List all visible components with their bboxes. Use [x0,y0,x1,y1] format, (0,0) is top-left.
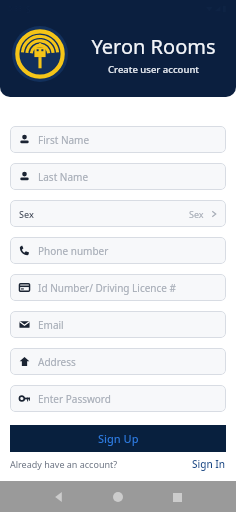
staticText: Enter Password [38,392,111,406]
staticText: Sign Up [98,431,139,446]
button[interactable]: Phone number [10,237,226,264]
staticText: Yeron Rooms [91,33,216,60]
staticText: Email [38,318,64,332]
staticText: Last Name [38,170,89,184]
staticText: Id Number/ Driving Licence # [38,281,177,295]
button[interactable]: Last Name [10,163,226,190]
button[interactable]: Address [10,348,226,375]
button[interactable]: Recent apps [165,485,189,509]
staticText: Sign In [192,457,226,471]
button[interactable]: Sign In [192,457,226,471]
button[interactable]: Enter Password [10,385,226,412]
button[interactable]: Back [47,485,71,509]
button[interactable]: Id Number/ Driving Licence # [10,274,226,301]
button[interactable]: Sex [10,200,226,227]
staticText: Create user account [108,63,199,76]
button[interactable]: Sign Up [10,425,226,452]
staticText: First Name [38,133,90,147]
staticText: Sex [189,208,204,220]
staticText: Already have an account? [10,458,118,470]
button[interactable]: Email [10,311,226,338]
staticText: Phone number [38,244,109,258]
staticText: Address [38,355,76,369]
button[interactable]: First Name [10,126,226,153]
button[interactable]: Home [106,485,130,509]
staticText: Sex [19,208,34,220]
